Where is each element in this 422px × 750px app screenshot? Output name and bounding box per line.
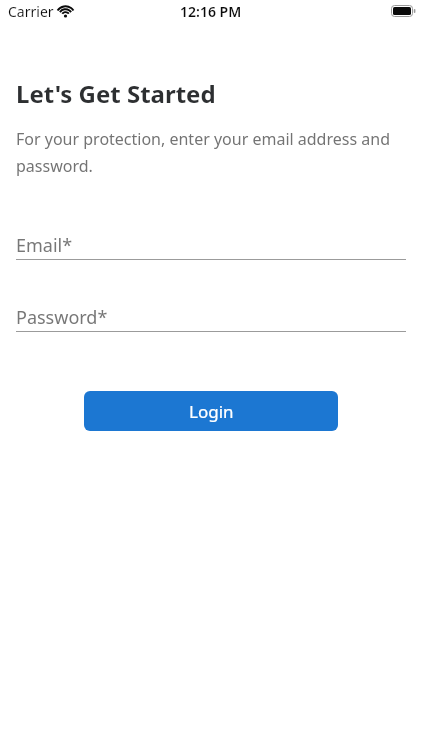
staticText: Let's Get Started [16,77,216,110]
staticText: Password* [16,305,108,330]
button[interactable]: Password* [16,305,406,332]
staticText: For your protection, enter your email ad… [16,128,390,177]
staticText: 12:16 PM [180,2,242,21]
staticText: Login [189,400,234,423]
button[interactable]: Login [84,391,338,431]
staticText: Email* [16,233,73,258]
button[interactable]: Email* [16,233,406,260]
staticText: Carrier [8,2,54,21]
